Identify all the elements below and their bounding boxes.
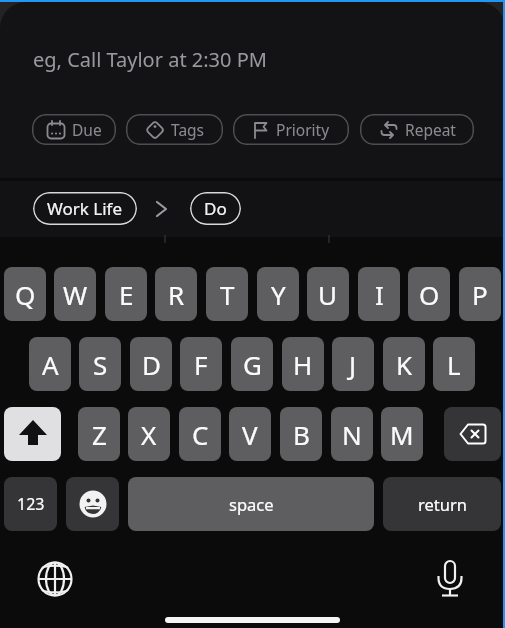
button[interactable]: L [433, 337, 475, 391]
staticText: return [418, 493, 467, 515]
button[interactable]: R [155, 267, 197, 321]
staticText: N [342, 417, 362, 452]
button[interactable] [4, 407, 61, 461]
button[interactable]: F [180, 337, 222, 391]
staticText: P [472, 277, 488, 312]
staticText: Q [15, 277, 36, 312]
staticText: Due [72, 119, 102, 140]
button[interactable] [444, 407, 501, 461]
button[interactable]: D [130, 337, 172, 391]
button[interactable]: C [179, 407, 221, 461]
staticText: eg, Call Taylor at 2:30 PM [33, 46, 267, 73]
staticText: Tags [171, 119, 205, 140]
button[interactable]: Tags [126, 114, 223, 145]
button[interactable]: O [408, 267, 450, 321]
staticText: E [119, 277, 134, 312]
button[interactable]: X [128, 407, 170, 461]
staticText: Repeat [405, 119, 456, 140]
staticText: D [142, 347, 161, 382]
button[interactable]: T [206, 267, 248, 321]
staticText: Z [92, 417, 107, 452]
button[interactable]: M [381, 407, 423, 461]
staticText: 123 [17, 493, 45, 515]
button[interactable]: Q [4, 267, 46, 321]
staticText: V [242, 417, 258, 452]
button[interactable]: P [459, 267, 501, 321]
staticText: O [419, 277, 440, 312]
staticText: L [447, 347, 461, 382]
staticText: Do [204, 197, 227, 220]
button[interactable] [36, 560, 74, 598]
staticText: B [293, 417, 310, 452]
staticText: U [318, 277, 338, 312]
button[interactable]: Work Life [33, 192, 137, 225]
staticText: K [396, 347, 413, 382]
staticText: Work Life [47, 197, 123, 220]
button[interactable] [433, 558, 467, 600]
button[interactable]: V [229, 407, 271, 461]
staticText: H [293, 347, 313, 382]
staticText: A [42, 347, 59, 382]
button[interactable]: Z [78, 407, 120, 461]
staticText: W [63, 277, 88, 312]
button[interactable]: K [383, 337, 425, 391]
button[interactable]: H [282, 337, 324, 391]
button[interactable]: E [105, 267, 147, 321]
button[interactable]: U [307, 267, 349, 321]
staticText: T [220, 277, 235, 312]
button[interactable]: W [54, 267, 96, 321]
staticText: space [229, 493, 274, 515]
button[interactable]: Due [32, 114, 116, 145]
staticText: F [194, 347, 208, 382]
button[interactable]: Y [257, 267, 299, 321]
staticText: M [390, 417, 414, 452]
staticText: C [192, 417, 209, 452]
button[interactable]: Priority [233, 114, 349, 145]
staticText: X [141, 417, 157, 452]
staticText: G [243, 347, 262, 382]
button[interactable]: space [128, 477, 374, 531]
button[interactable] [66, 477, 119, 531]
button[interactable]: I [358, 267, 400, 321]
button[interactable]: return [383, 477, 501, 531]
button[interactable]: J [332, 337, 374, 391]
button[interactable]: A [29, 337, 71, 391]
staticText: Y [271, 277, 286, 312]
button[interactable]: N [331, 407, 373, 461]
button[interactable]: B [280, 407, 322, 461]
button[interactable]: G [231, 337, 273, 391]
staticText: S [93, 347, 108, 382]
button[interactable]: Repeat [360, 114, 474, 145]
button[interactable]: Do [190, 192, 241, 225]
staticText: J [349, 347, 357, 382]
staticText: I [375, 277, 384, 312]
staticText: R [168, 277, 185, 312]
staticText: Priority [276, 119, 330, 140]
button[interactable]: 123 [4, 477, 57, 531]
button[interactable]: S [79, 337, 121, 391]
